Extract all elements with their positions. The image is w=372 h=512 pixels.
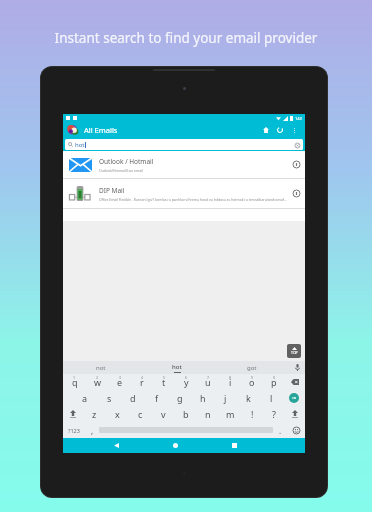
button[interactable]: u (197, 374, 219, 390)
button[interactable]: Info (292, 189, 301, 198)
button[interactable]: x (106, 406, 129, 422)
button[interactable]: Voice input (289, 361, 305, 374)
staticText: 143 (295, 116, 302, 121)
staticText: hot (75, 141, 85, 149)
button[interactable]: n (197, 406, 219, 422)
staticText: , (91, 425, 94, 436)
button[interactable]: d (121, 390, 145, 406)
staticText: i (229, 376, 232, 388)
button[interactable]: j (214, 390, 237, 406)
staticText: p (271, 376, 277, 388)
button[interactable]: Outlook / Hotmail (67, 151, 301, 178)
staticText: TOP (291, 350, 298, 355)
button[interactable]: a (73, 390, 97, 406)
staticText: ?123 (68, 427, 80, 434)
staticText: f (155, 392, 159, 404)
button[interactable]: ? (263, 406, 285, 422)
staticText: Outlook / Hotmail (99, 157, 154, 166)
staticText: Office Email Flexible - Runsen lgtv1 bem… (99, 197, 288, 202)
staticText: hot (172, 363, 182, 371)
button[interactable]: l (260, 390, 283, 406)
button[interactable]: q (63, 374, 86, 390)
button[interactable]: p (263, 374, 285, 390)
button[interactable]: w (86, 374, 109, 390)
staticText: c (138, 408, 143, 420)
staticText: n (205, 408, 211, 420)
staticText: ? (272, 408, 276, 420)
staticText: 7 (207, 375, 210, 380)
button[interactable]: got (214, 361, 289, 374)
staticText: j (224, 392, 227, 404)
button[interactable]: ?123 (63, 422, 85, 438)
staticText: 0 (273, 375, 276, 380)
staticText: All Emails (84, 125, 118, 135)
button[interactable]: k (237, 390, 260, 406)
staticText: u (205, 376, 211, 388)
button[interactable]: hot (139, 361, 214, 374)
staticText: ! (251, 408, 254, 420)
staticText: not (96, 364, 106, 372)
button[interactable]: Scroll to top (287, 344, 301, 358)
staticText: 3 (119, 375, 122, 380)
staticText: a (82, 392, 88, 404)
staticText: 4 (141, 375, 144, 380)
button[interactable]: Shift (285, 406, 305, 422)
button[interactable]: i (219, 374, 241, 390)
staticText: x (115, 408, 120, 420)
staticText: q (72, 376, 78, 388)
staticText: z (92, 408, 97, 420)
button[interactable]: Info (292, 160, 301, 169)
staticText: 6 (185, 375, 188, 380)
button[interactable]: f (145, 390, 168, 406)
button[interactable]: Backspace (285, 374, 305, 390)
button[interactable]: z (83, 406, 106, 422)
button[interactable]: t (153, 374, 175, 390)
button[interactable]: Home (259, 123, 273, 137)
staticText: v (161, 408, 166, 420)
button[interactable]: c (129, 406, 152, 422)
button[interactable]: Back (105, 438, 127, 453)
staticText: b (183, 408, 189, 420)
button[interactable]: ! (241, 406, 263, 422)
button[interactable]: h (191, 390, 214, 406)
staticText: . (279, 425, 282, 436)
staticText: Outlook/Hotmail/Live email (99, 168, 143, 173)
button[interactable]: hot (68, 139, 300, 150)
button[interactable]: Emoji (287, 422, 305, 438)
staticText: got (247, 364, 257, 372)
button[interactable]: More options (287, 123, 301, 137)
staticText: k (246, 392, 251, 404)
button[interactable]: o (241, 374, 263, 390)
button[interactable]: s (97, 390, 121, 406)
button[interactable]: Home (164, 438, 186, 453)
staticText: l (270, 392, 273, 404)
button[interactable]: m (219, 406, 241, 422)
staticText: 1 (73, 375, 76, 380)
button[interactable]: , (85, 422, 99, 438)
staticText: h (200, 392, 206, 404)
button[interactable]: not (63, 361, 139, 374)
button[interactable]: Recents (223, 438, 245, 453)
button[interactable]: e (109, 374, 131, 390)
button[interactable]: y (175, 374, 197, 390)
staticText: 2 (96, 375, 99, 380)
button[interactable]: Shift (63, 406, 83, 422)
staticText: DIP Mail (99, 186, 125, 195)
button[interactable]: g (168, 390, 191, 406)
staticText: r (140, 376, 144, 388)
button[interactable]: Refresh (273, 123, 287, 137)
button[interactable]: v (152, 406, 175, 422)
button[interactable]: b (175, 406, 197, 422)
button[interactable]: DIP Mail (67, 179, 301, 208)
staticText: 9 (251, 375, 254, 380)
button[interactable]: . (273, 422, 287, 438)
button[interactable]: r (131, 374, 153, 390)
staticText: s (107, 392, 112, 404)
button[interactable]: Enter (283, 390, 305, 406)
button[interactable]: Clear search (294, 142, 300, 148)
staticText: d (130, 392, 136, 404)
staticText: 5 (163, 375, 166, 380)
staticText: o (249, 376, 255, 388)
staticText: y (184, 376, 189, 388)
